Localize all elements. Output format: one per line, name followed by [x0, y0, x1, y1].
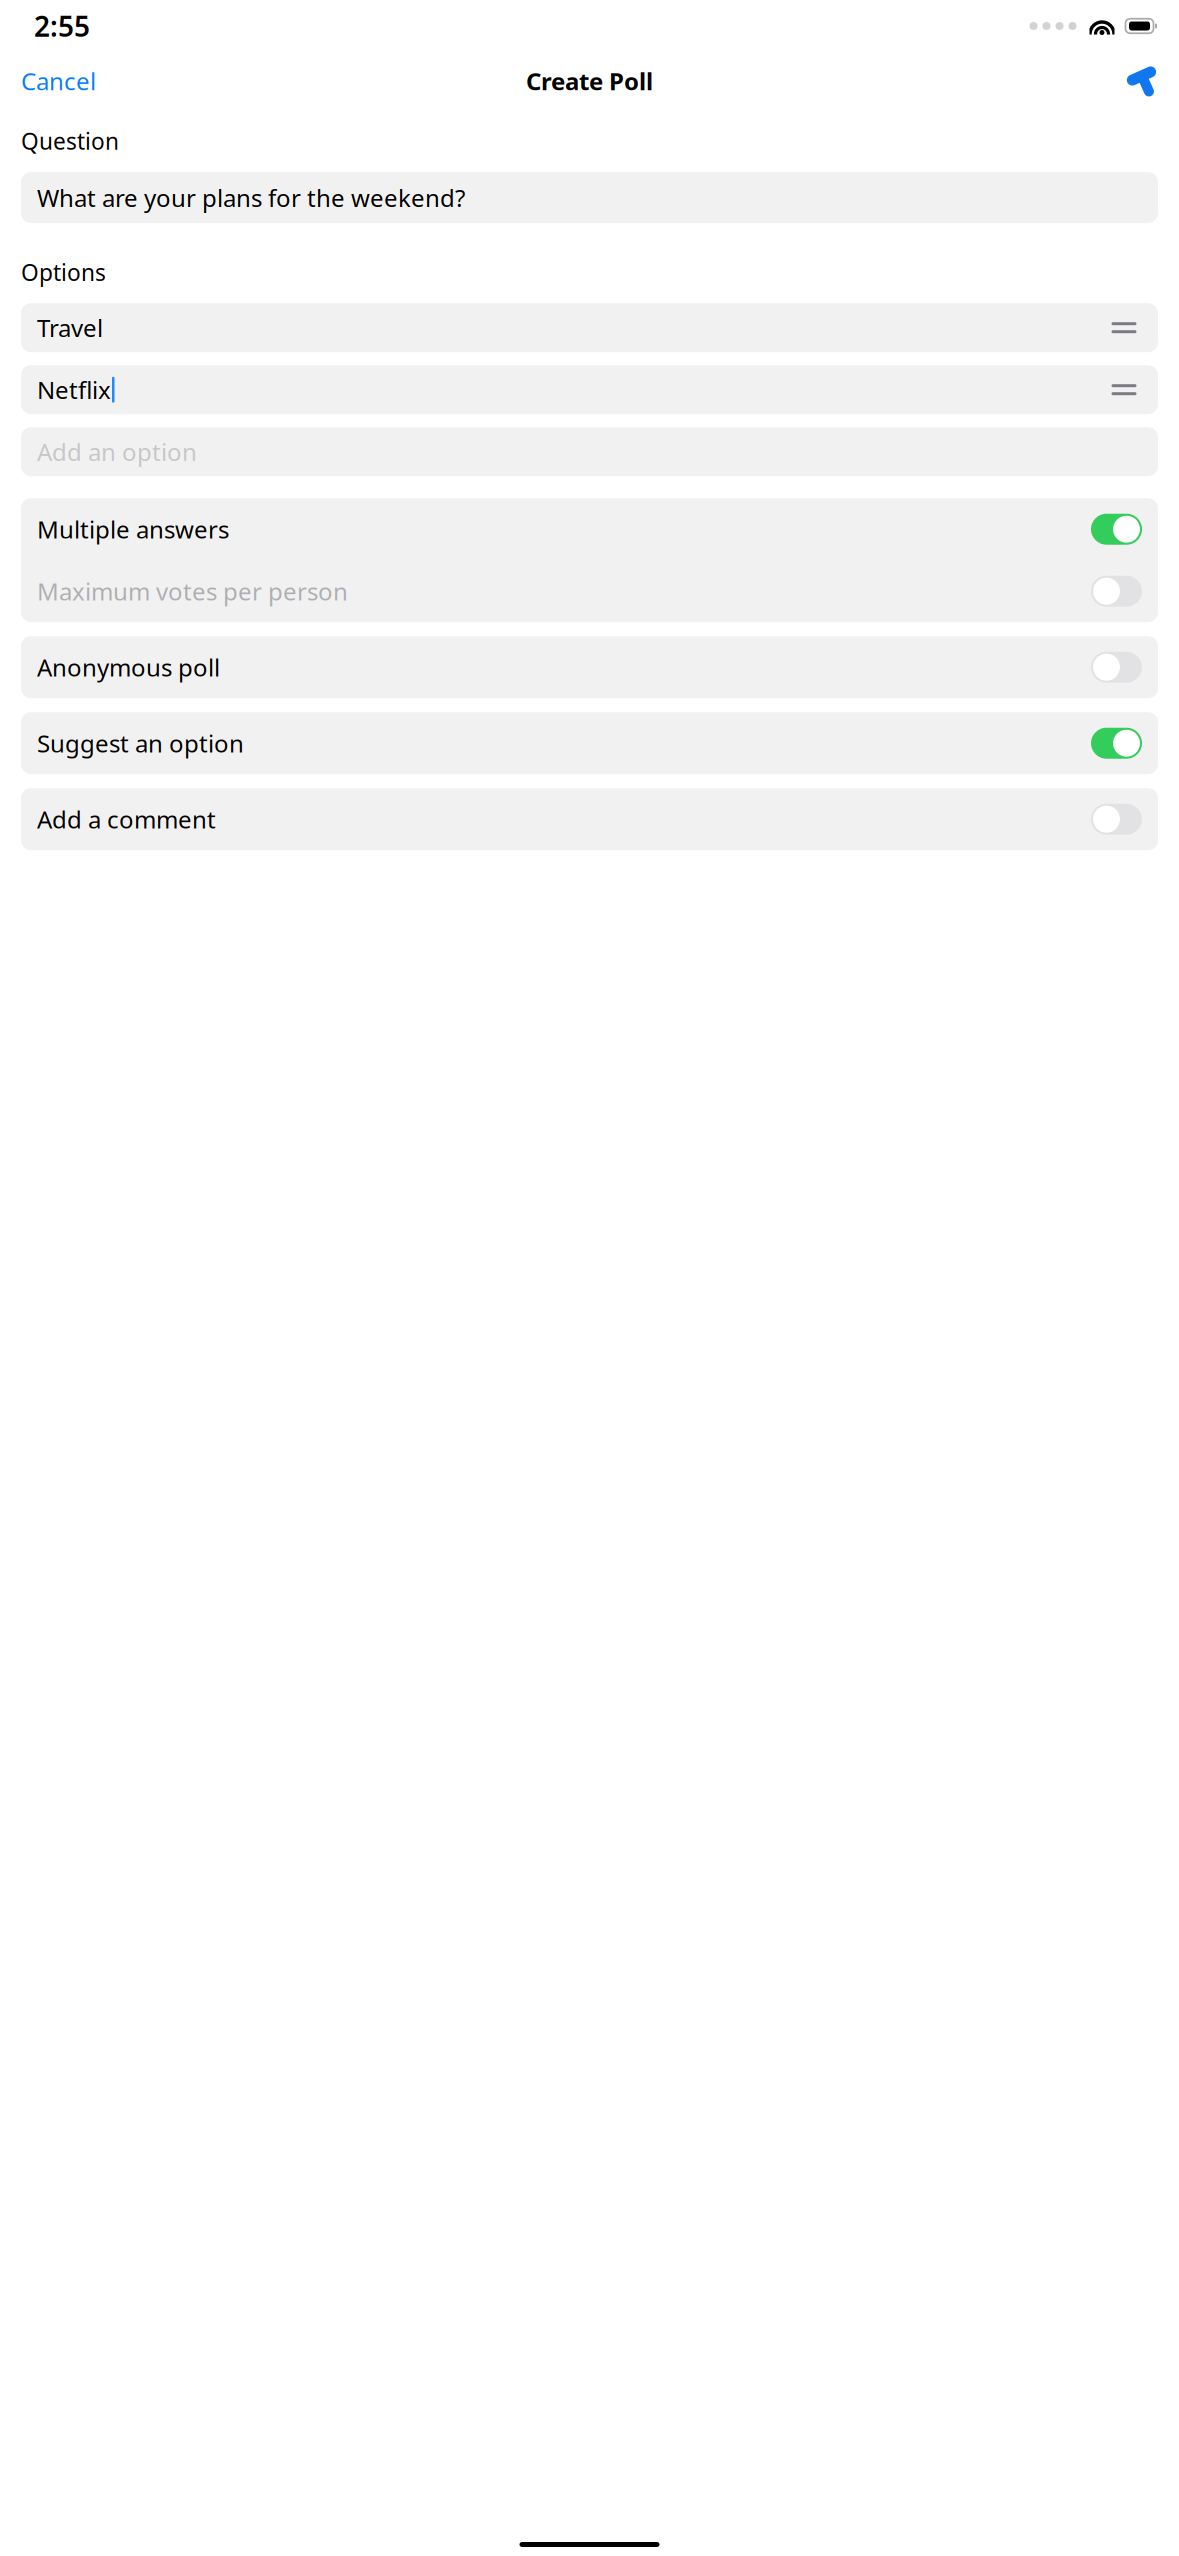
- staticText: Options: [21, 257, 106, 287]
- staticText: Netflix: [37, 374, 111, 406]
- button[interactable]: Maximum votes per person: [21, 560, 1158, 622]
- staticText: Add a comment: [37, 803, 216, 835]
- staticText: Maximum votes per person: [37, 575, 348, 607]
- button[interactable]: Multiple answers: [21, 498, 1158, 560]
- button[interactable]: Travel: [0, 303, 1179, 352]
- button[interactable]: Add an option: [0, 427, 1179, 476]
- button[interactable]: Suggest an option: [0, 712, 1179, 774]
- staticText: Add an option: [37, 436, 197, 468]
- staticText: Multiple answers: [37, 513, 229, 545]
- staticText: What are your plans for the weekend?: [37, 182, 465, 214]
- staticText: Cancel: [21, 65, 96, 97]
- button[interactable]: Add a comment: [0, 788, 1179, 850]
- staticText: Anonymous poll: [37, 651, 220, 683]
- button[interactable]: Anonymous poll: [0, 636, 1179, 698]
- staticText: Create Poll: [526, 65, 653, 97]
- button[interactable]: Cancel: [0, 51, 117, 111]
- staticText: 2:55: [34, 7, 90, 45]
- staticText: Suggest an option: [37, 727, 244, 759]
- button[interactable]: Send poll: [1106, 51, 1179, 110]
- staticText: Travel: [37, 312, 103, 344]
- staticText: Question: [21, 126, 119, 156]
- button[interactable]: Netflix: [0, 365, 1179, 414]
